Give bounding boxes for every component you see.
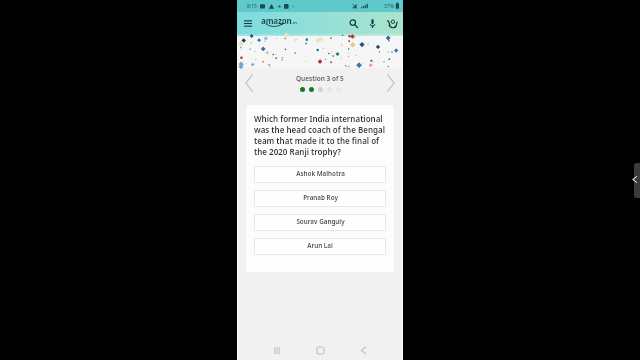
button[interactable]: Menu <box>240 16 255 31</box>
staticText: Question 3 of 5 <box>296 74 344 83</box>
button[interactable]: Recent apps <box>269 342 285 358</box>
staticText: 37% <box>384 3 394 10</box>
button[interactable]: Shopping cart <box>384 15 400 31</box>
staticText: Sourav Ganguly <box>296 217 345 226</box>
button[interactable]: Previous question <box>242 71 256 95</box>
button[interactable]: Home <box>312 342 328 358</box>
button[interactable]: Open side panel <box>634 163 640 198</box>
button[interactable]: Ashok Malhotra <box>254 166 386 183</box>
staticText: Pranab Roy <box>303 193 338 202</box>
staticText: Ashok Malhotra <box>296 169 345 178</box>
button[interactable]: Next question <box>384 71 398 95</box>
button[interactable]: Search <box>345 15 361 31</box>
button[interactable]: Back <box>355 342 371 358</box>
button[interactable]: Sourav Ganguly <box>254 214 386 231</box>
staticText: 8:15 <box>247 3 257 10</box>
staticText: Arun Lal <box>307 241 333 250</box>
button[interactable]: Pranab Roy <box>254 190 386 207</box>
staticText: amazon <box>261 15 292 26</box>
staticText: Which former India international was the… <box>254 113 386 157</box>
staticText: .in <box>292 20 297 25</box>
button[interactable]: Arun Lal <box>254 238 386 255</box>
button[interactable]: Voice search <box>364 15 380 31</box>
